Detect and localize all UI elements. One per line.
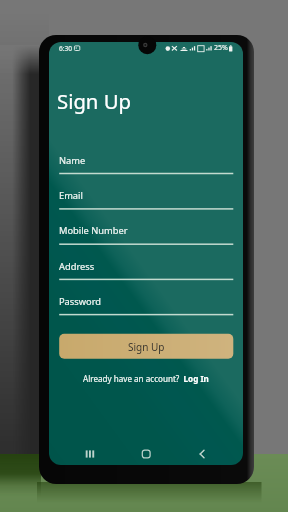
staticText: Mobile Number: [59, 224, 128, 237]
staticText: Sign Up: [128, 340, 165, 354]
staticText: 25%: [214, 43, 228, 53]
button[interactable]: Back: [187, 445, 217, 463]
button[interactable]: Password: [59, 292, 233, 316]
staticText: Email: [59, 189, 83, 202]
staticText: Name: [59, 154, 86, 167]
staticText: 6:30: [59, 44, 73, 53]
button[interactable]: Sign Up: [59, 334, 233, 359]
button[interactable]: Name: [59, 151, 233, 175]
staticText: Password: [59, 295, 102, 308]
button[interactable]: Mobile Number: [59, 221, 233, 245]
button[interactable]: Email: [59, 186, 233, 210]
button[interactable]: Recent apps: [76, 445, 106, 463]
staticText: Already have an account? Log In: [83, 373, 209, 384]
button[interactable]: Log In: [146, 373, 174, 387]
button[interactable]: Home: [131, 445, 161, 463]
staticText: Sign Up: [57, 87, 132, 115]
staticText: Address: [59, 260, 95, 273]
button[interactable]: Address: [59, 256, 233, 280]
